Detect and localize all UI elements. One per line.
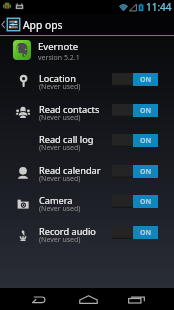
staticText: (Never used)	[39, 235, 81, 245]
staticText: (Never used)	[39, 113, 81, 123]
button[interactable]: Evernote	[0, 36, 174, 64]
button[interactable]: Read calendar	[0, 156, 174, 187]
staticText: Record audio	[39, 225, 96, 238]
staticText: ON	[140, 228, 152, 238]
staticText: Read call log	[39, 133, 94, 146]
staticText: Read calendar	[39, 164, 101, 177]
staticText: ON	[140, 75, 152, 85]
staticText: version 5.2.1	[38, 53, 80, 63]
staticText: ON	[140, 136, 152, 146]
staticText: Camera	[39, 194, 73, 207]
staticText: App ops	[23, 18, 63, 32]
button[interactable]: Read call log	[0, 125, 174, 156]
staticText: 11:44	[146, 0, 172, 14]
button[interactable]: Toggle Location	[112, 73, 158, 86]
staticText: Read contacts	[39, 103, 100, 116]
staticText: (Never used)	[39, 143, 81, 153]
button[interactable]: Toggle Read contacts	[112, 104, 158, 117]
staticText: ON	[140, 106, 152, 116]
button[interactable]: Recent apps	[124, 288, 148, 310]
button[interactable]: Navigate up	[0, 14, 20, 35]
staticText: (Never used)	[39, 174, 81, 184]
button[interactable]: Back	[26, 288, 50, 310]
staticText: (Never used)	[39, 204, 81, 214]
staticText: Evernote	[38, 40, 79, 53]
staticText: Location	[39, 72, 76, 85]
button[interactable]: Toggle Read calendar	[112, 165, 158, 178]
staticText: ON	[140, 197, 152, 207]
button[interactable]: Read contacts	[0, 95, 174, 126]
button[interactable]: Toggle Read call log	[112, 134, 158, 147]
button[interactable]: Camera	[0, 186, 174, 217]
button[interactable]: Location	[0, 64, 174, 95]
button[interactable]: Home	[76, 288, 100, 310]
button[interactable]: Record audio	[0, 217, 174, 248]
staticText: (Never used)	[39, 82, 81, 92]
button[interactable]: Toggle Record audio	[112, 226, 158, 239]
staticText: ON	[140, 167, 152, 177]
button[interactable]: Toggle Camera	[112, 195, 158, 208]
